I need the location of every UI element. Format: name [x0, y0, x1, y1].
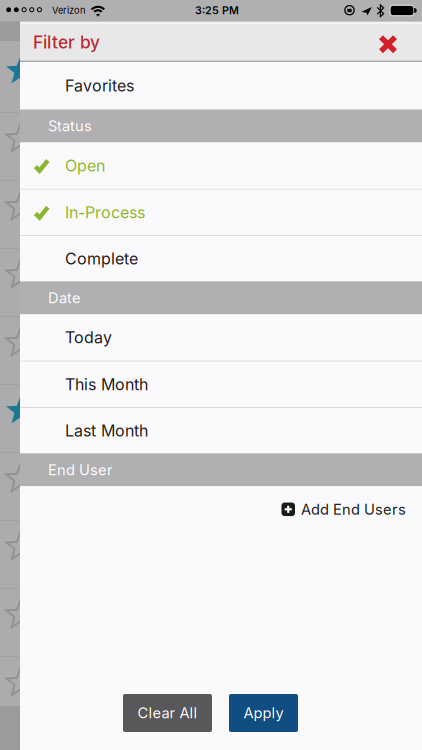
button[interactable]: Open: [20, 142, 422, 189]
button[interactable]: Apply: [229, 694, 298, 732]
button[interactable]: Complete: [20, 236, 422, 281]
staticText: End User: [48, 461, 113, 478]
staticText: 3:25 PM: [195, 4, 239, 17]
staticText: Today: [65, 328, 112, 347]
staticText: Favorites: [65, 76, 134, 95]
staticText: In-Process: [65, 203, 145, 222]
staticText: Complete: [65, 249, 138, 268]
button[interactable]: Close: [378, 33, 422, 52]
button[interactable]: Last Month: [20, 408, 422, 453]
staticText: Status: [48, 117, 92, 135]
button[interactable]: Clear All: [123, 694, 212, 732]
staticText: Date: [48, 289, 81, 306]
staticText: Add End Users: [301, 501, 406, 518]
staticText: Verizon: [52, 5, 86, 16]
button[interactable]: Today: [20, 314, 422, 361]
button[interactable]: Add End Users: [20, 486, 422, 536]
staticText: Last Month: [65, 421, 148, 440]
staticText: This Month: [65, 375, 148, 394]
staticText: Filter by: [33, 32, 100, 52]
staticText: Clear All: [137, 704, 197, 722]
staticText: Open: [65, 156, 105, 175]
button[interactable]: Favorites: [20, 62, 422, 109]
staticText: Apply: [243, 704, 283, 722]
button[interactable]: This Month: [20, 362, 422, 407]
button[interactable]: In-Process: [20, 190, 422, 235]
